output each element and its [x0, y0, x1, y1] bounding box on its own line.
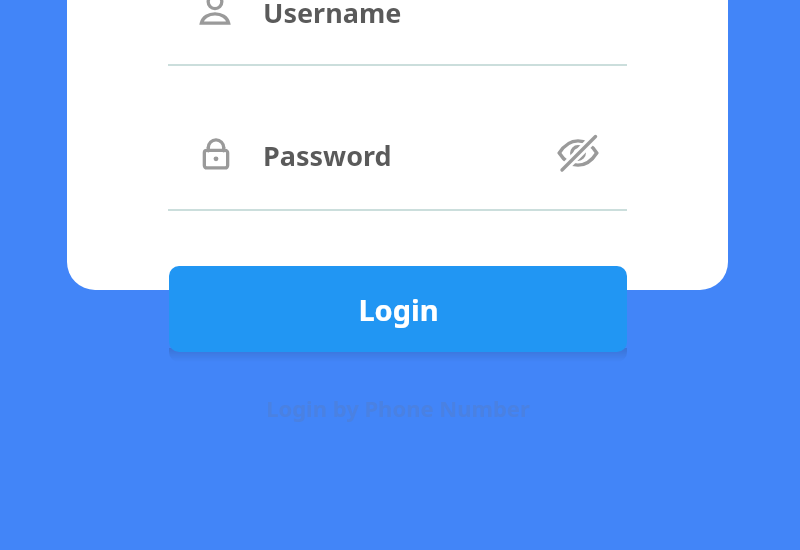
staticText: Username [263, 0, 402, 31]
staticText: Login by Phone Number [266, 393, 530, 423]
staticText: Password [263, 137, 392, 174]
staticText: Login [358, 290, 439, 329]
button[interactable]: Username [193, 0, 237, 32]
button[interactable]: Show password [553, 128, 603, 178]
button[interactable]: Login by Phone Number [228, 388, 568, 428]
button[interactable]: Password [194, 131, 238, 175]
button[interactable]: Login [169, 266, 627, 352]
